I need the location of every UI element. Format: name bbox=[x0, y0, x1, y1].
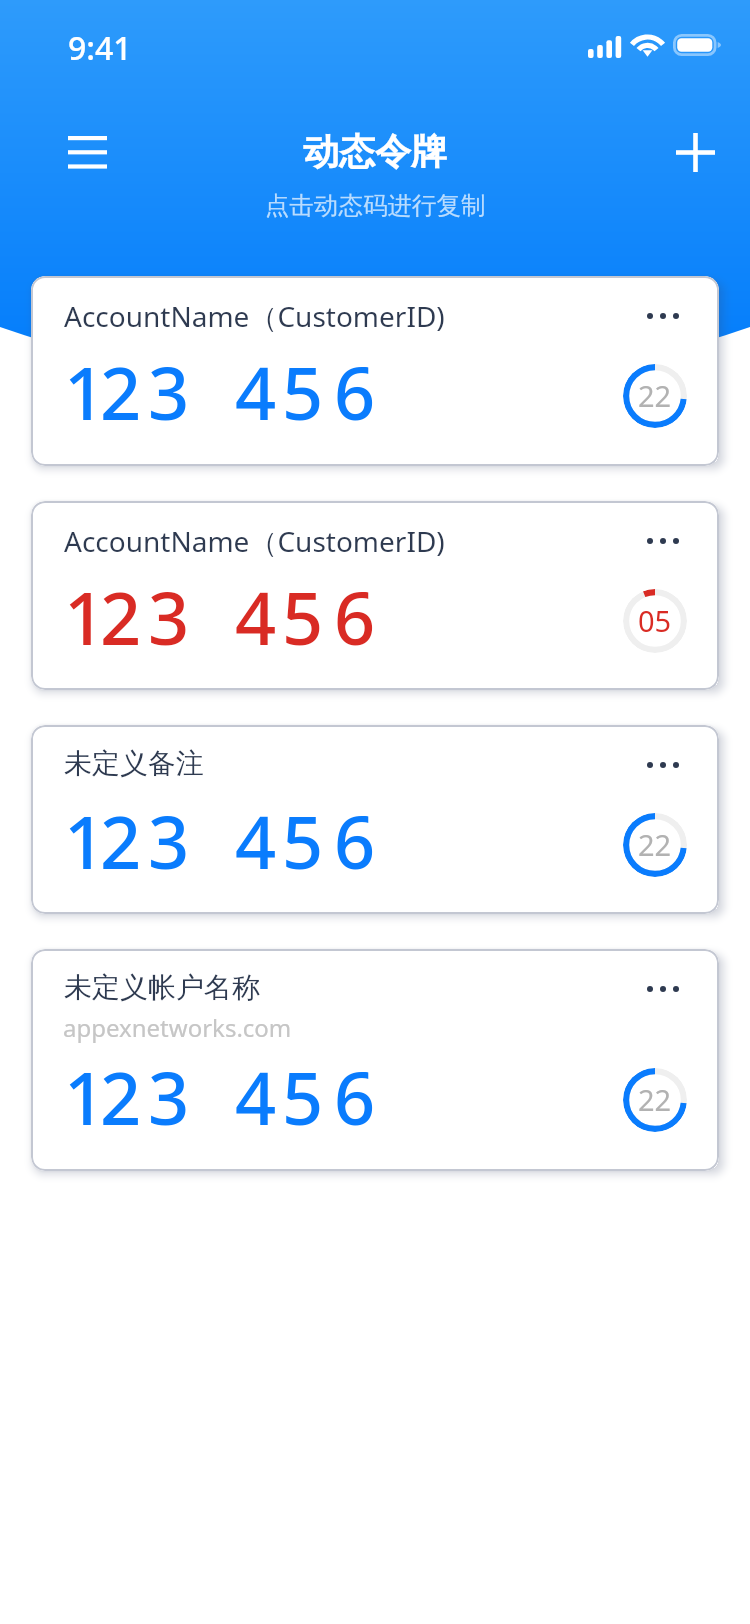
staticText: 9:41 bbox=[68, 26, 132, 70]
staticText: 6 bbox=[334, 568, 376, 666]
staticText: 3 bbox=[148, 568, 190, 666]
button[interactable]: More options bbox=[619, 287, 707, 345]
staticText: 1 bbox=[64, 792, 106, 890]
staticText: 2 bbox=[100, 568, 142, 666]
staticText: 22 bbox=[638, 1080, 672, 1119]
staticText: 未定义备注 bbox=[64, 746, 204, 781]
button[interactable]: More options bbox=[619, 960, 707, 1018]
button[interactable]: Seconds remaining 22 bbox=[623, 1068, 687, 1132]
staticText: 5 bbox=[282, 792, 324, 890]
staticText: 4 bbox=[235, 568, 277, 666]
button[interactable]: Seconds remaining 05 bbox=[623, 589, 687, 653]
button[interactable]: Menu bbox=[44, 116, 130, 188]
staticText: 2 bbox=[100, 1048, 142, 1146]
staticText: 3 bbox=[148, 1048, 190, 1146]
staticText: 05 bbox=[638, 601, 672, 640]
staticText: 点击动态码进行复制 bbox=[265, 190, 486, 221]
staticText: 6 bbox=[334, 1048, 376, 1146]
staticText: appexnetworks.com bbox=[63, 1011, 292, 1044]
staticText: 2 bbox=[100, 343, 142, 441]
staticText: 3 bbox=[148, 343, 190, 441]
staticText: 5 bbox=[282, 343, 324, 441]
button[interactable]: 未定义帐户名称 bbox=[31, 949, 719, 1171]
button[interactable]: Add token bbox=[652, 116, 738, 188]
staticText: 未定义帐户名称 bbox=[64, 970, 260, 1005]
staticText: 3 bbox=[148, 792, 190, 890]
button[interactable]: 未定义备注 bbox=[31, 725, 719, 914]
staticText: 4 bbox=[235, 1048, 277, 1146]
staticText: AccountName（CustomerID) bbox=[64, 522, 445, 560]
button[interactable]: Seconds remaining 22 bbox=[623, 364, 687, 428]
staticText: 6 bbox=[334, 343, 376, 441]
staticText: 6 bbox=[334, 792, 376, 890]
staticText: 5 bbox=[282, 1048, 324, 1146]
staticText: 2 bbox=[100, 792, 142, 890]
staticText: AccountName（CustomerID) bbox=[64, 297, 445, 335]
button[interactable]: AccountName（CustomerID) bbox=[31, 276, 719, 466]
button[interactable]: More options bbox=[619, 512, 707, 570]
staticText: 22 bbox=[638, 376, 672, 415]
button[interactable]: More options bbox=[619, 736, 707, 794]
staticText: 1 bbox=[64, 1048, 106, 1146]
staticText: 4 bbox=[235, 343, 277, 441]
staticText: 5 bbox=[282, 568, 324, 666]
staticText: 4 bbox=[235, 792, 277, 890]
staticText: 动态令牌 bbox=[303, 129, 447, 174]
staticText: 1 bbox=[64, 343, 106, 441]
button[interactable]: Seconds remaining 22 bbox=[623, 813, 687, 877]
button[interactable]: AccountName（CustomerID) bbox=[31, 501, 719, 690]
staticText: 1 bbox=[64, 568, 106, 666]
staticText: 22 bbox=[638, 825, 672, 864]
